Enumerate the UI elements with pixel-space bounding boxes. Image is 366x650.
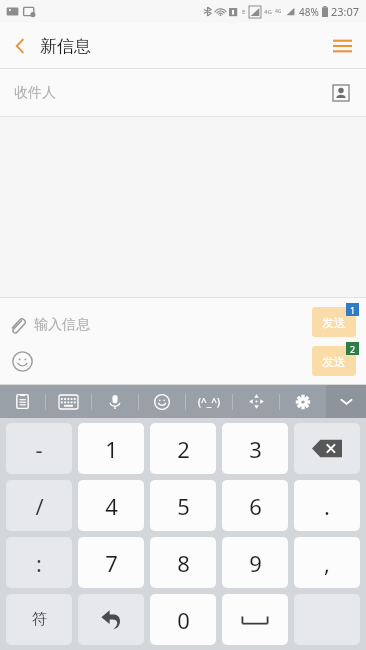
- staticText: 收件人: [14, 84, 56, 102]
- button[interactable]: emoji: [139, 385, 185, 418]
- button[interactable]: Return: [78, 594, 144, 645]
- staticText: .: [324, 491, 330, 521]
- button[interactable]: move: [233, 385, 279, 418]
- button[interactable]: 5: [150, 480, 216, 531]
- staticText: 2: [177, 434, 190, 464]
- staticText: 0: [177, 605, 190, 635]
- button[interactable]: Back: [0, 26, 40, 66]
- staticText: -: [35, 434, 43, 464]
- button[interactable]: Emoji: [5, 344, 39, 378]
- button[interactable]: 发送: [312, 346, 356, 376]
- button[interactable]: -: [6, 423, 72, 474]
- button[interactable]: 2: [150, 423, 216, 474]
- staticText: 1: [105, 434, 118, 464]
- staticText: 4G: [275, 8, 282, 15]
- button[interactable]: 8: [150, 537, 216, 588]
- button[interactable]: kao: [186, 385, 232, 418]
- button[interactable]: clip: [0, 385, 45, 418]
- button[interactable]: 6: [222, 480, 288, 531]
- button[interactable]: Attach: [0, 308, 34, 342]
- button[interactable]: Menu: [318, 23, 366, 68]
- button[interactable]: 1: [78, 423, 144, 474]
- button[interactable]: 收件人: [0, 69, 366, 116]
- staticText: 4G: [264, 8, 272, 16]
- staticText: 23:07: [331, 4, 360, 19]
- button[interactable]: 3: [222, 423, 288, 474]
- staticText: 48%: [299, 5, 319, 19]
- staticText: 4: [105, 491, 118, 521]
- staticText: (^_^): [198, 395, 220, 409]
- button[interactable]: 4: [78, 480, 144, 531]
- staticText: 符: [32, 610, 47, 629]
- button[interactable]: /: [6, 480, 72, 531]
- staticText: 发送: [322, 354, 346, 369]
- staticText: /: [35, 491, 44, 521]
- button[interactable]: Backspace: [294, 423, 360, 474]
- button[interactable]: Space: [222, 594, 288, 645]
- button[interactable]: gear: [280, 385, 326, 418]
- button[interactable]: ,: [294, 537, 360, 588]
- staticText: 2: [350, 343, 356, 355]
- staticText: ,: [324, 548, 330, 578]
- button[interactable]: 0: [150, 594, 216, 645]
- staticText: 9: [249, 548, 262, 578]
- button[interactable]: 符: [6, 594, 72, 645]
- button[interactable]: Hide keyboard: [326, 385, 366, 418]
- staticText: 1: [350, 304, 356, 316]
- staticText: 新信息: [40, 36, 91, 57]
- button[interactable]: Contacts: [326, 78, 356, 108]
- staticText: :: [36, 548, 42, 578]
- staticText: 6: [249, 491, 262, 521]
- staticText: 发送: [322, 315, 346, 330]
- staticText: 8: [177, 548, 190, 578]
- button[interactable]: 发送: [312, 307, 356, 337]
- button[interactable]: .: [294, 480, 360, 531]
- staticText: 输入信息: [34, 316, 90, 334]
- button[interactable]: mic: [92, 385, 138, 418]
- button[interactable]: :: [6, 537, 72, 588]
- button[interactable]: kb: [46, 385, 91, 418]
- button[interactable]: 7: [78, 537, 144, 588]
- staticText: E: [242, 8, 246, 16]
- staticText: 3: [249, 434, 262, 464]
- button[interactable]: 9: [222, 537, 288, 588]
- staticText: 5: [177, 491, 190, 521]
- staticText: 7: [105, 548, 118, 578]
